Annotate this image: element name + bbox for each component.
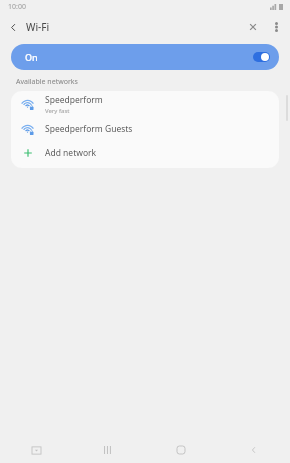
- button[interactable]: Close: [241, 15, 265, 39]
- button[interactable]: Speedperform Guests: [11, 117, 279, 141]
- button[interactable]: Recent apps: [72, 437, 144, 463]
- staticText: Add network: [45, 147, 97, 159]
- button[interactable]: Hide keyboard: [0, 437, 72, 463]
- staticText: 10:00: [8, 2, 26, 12]
- button[interactable]: Add network: [11, 141, 279, 165]
- button[interactable]: Back: [0, 14, 26, 40]
- staticText: Speedperform: [45, 94, 103, 106]
- staticText: On: [25, 51, 38, 63]
- staticText: Speedperform Guests: [45, 123, 133, 135]
- button[interactable]: Home: [144, 437, 217, 463]
- staticText: Very fast: [45, 107, 70, 115]
- staticText: Available networks: [16, 77, 78, 87]
- button[interactable]: Speedperform: [11, 91, 279, 117]
- button[interactable]: More options: [265, 16, 287, 38]
- button[interactable]: On: [11, 44, 279, 70]
- staticText: Wi-Fi: [26, 20, 50, 34]
